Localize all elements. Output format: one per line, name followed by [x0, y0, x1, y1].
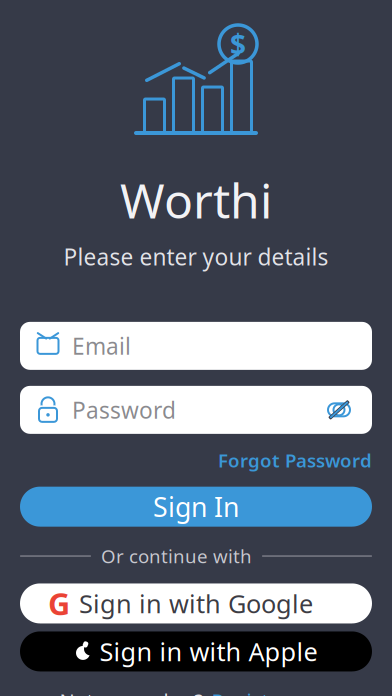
staticText: Sign in with Google: [79, 587, 313, 620]
staticText: Sign in with Apple: [99, 635, 317, 668]
button[interactable]: Forgot Password: [218, 444, 372, 477]
button[interactable]: Show password: [322, 395, 356, 425]
staticText: Worthi: [120, 168, 272, 232]
staticText: Forgot Password: [218, 448, 372, 473]
staticText: Sign In: [153, 489, 239, 524]
button[interactable]: Not a member?: [59, 687, 332, 696]
staticText: $: [230, 25, 246, 63]
button[interactable]: Sign In: [20, 487, 372, 527]
button[interactable]: G: [20, 583, 372, 623]
staticText: Not a member?: [59, 687, 203, 696]
staticText: Password: [72, 395, 176, 425]
staticText: Register now: [211, 687, 332, 696]
staticText: G: [48, 583, 70, 624]
staticText: Please enter your details: [63, 242, 328, 272]
button[interactable]: Sign in with Apple: [20, 631, 372, 671]
staticText: Email: [72, 331, 131, 361]
staticText: Or continue with: [101, 544, 252, 568]
